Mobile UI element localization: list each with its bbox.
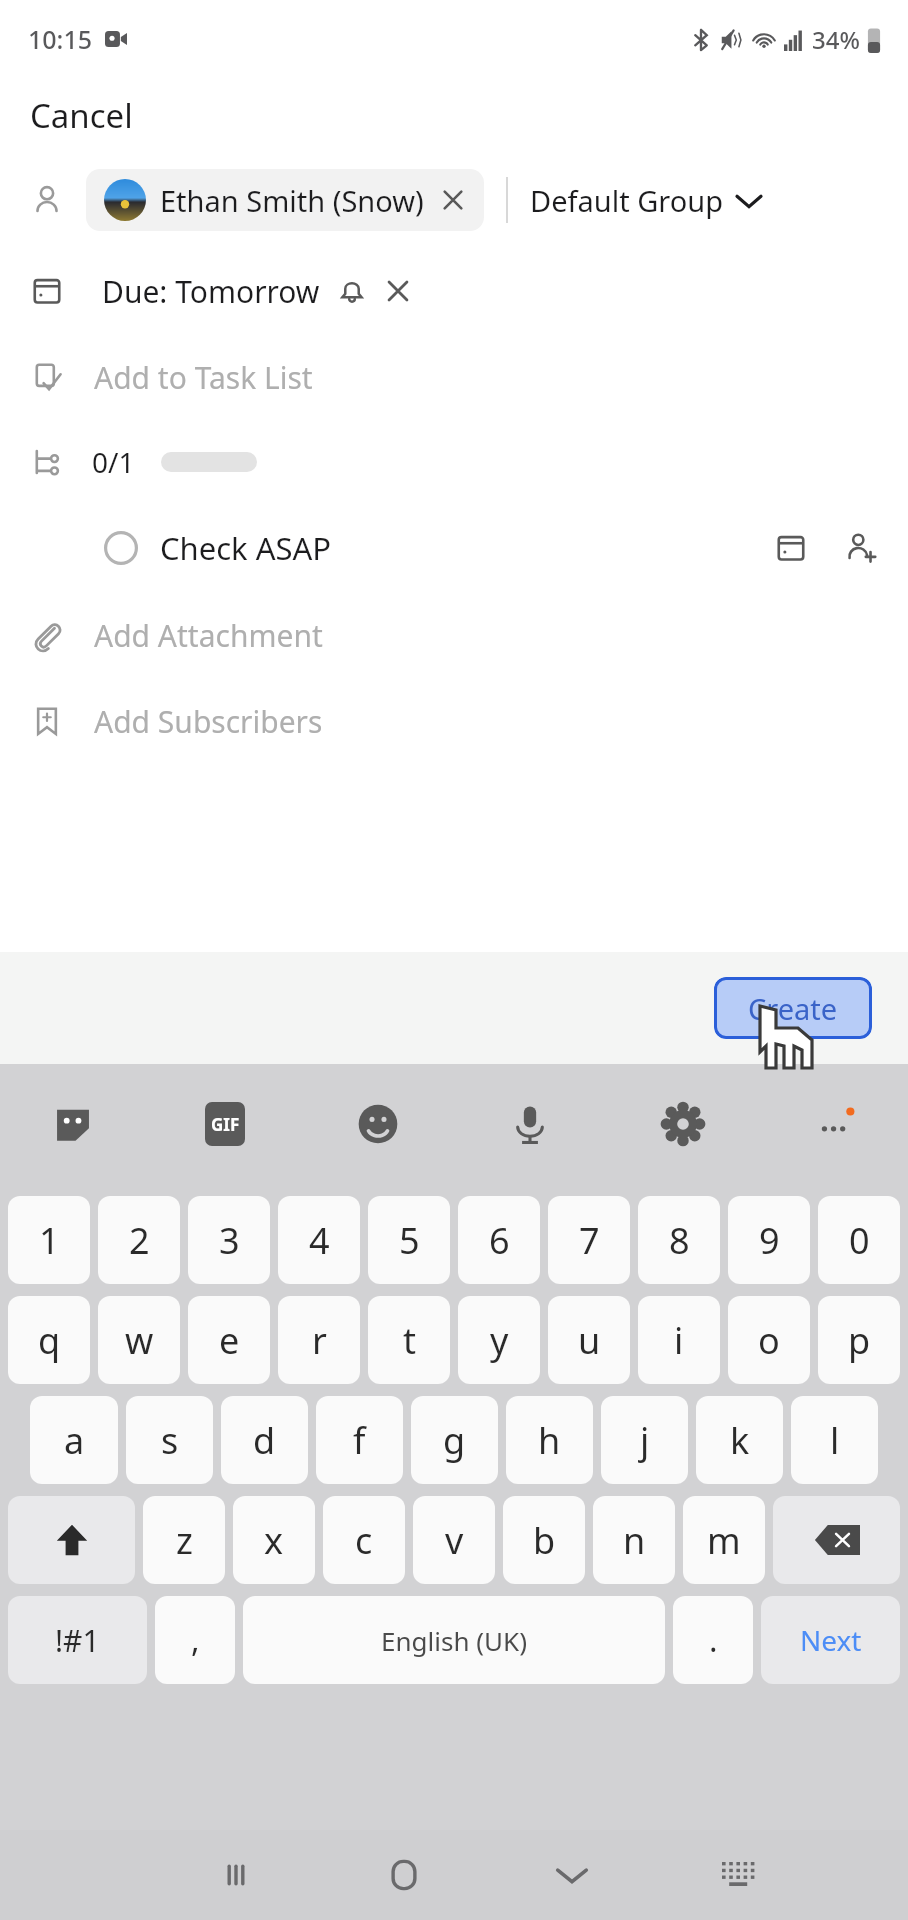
staticText: d <box>253 1416 276 1465</box>
staticText: Check ASAP <box>160 527 332 569</box>
button[interactable]: o <box>728 1296 810 1384</box>
button[interactable]: a <box>30 1396 118 1484</box>
button[interactable]: Due: Tomorrow <box>0 248 908 334</box>
button[interactable]: Switch keyboard <box>656 1830 824 1920</box>
button[interactable]: g <box>411 1396 498 1484</box>
button[interactable]: Ethan Smith (Snow) <box>86 169 484 231</box>
button[interactable]: q <box>8 1296 90 1384</box>
button[interactable]: 9 <box>728 1196 810 1284</box>
staticText: Next <box>800 1621 862 1659</box>
staticText: h <box>538 1416 561 1465</box>
button[interactable]: d <box>221 1396 308 1484</box>
staticText: 0/1 <box>92 443 135 481</box>
staticText: i <box>674 1316 684 1365</box>
button[interactable]: Add to Task List <box>0 334 908 420</box>
button[interactable]: s <box>126 1396 213 1484</box>
staticText: p <box>848 1316 871 1365</box>
button[interactable]: 2 <box>98 1196 180 1284</box>
button[interactable]: GIF <box>198 1097 252 1151</box>
button[interactable]: 0 <box>818 1196 900 1284</box>
button[interactable]: Hide keyboard <box>488 1830 656 1920</box>
button[interactable]: Voice input <box>503 1097 557 1151</box>
button[interactable]: 5 <box>368 1196 450 1284</box>
button[interactable]: i <box>638 1296 720 1384</box>
staticText: f <box>353 1416 366 1465</box>
button[interactable]: x <box>233 1496 315 1584</box>
button[interactable]: b <box>503 1496 585 1584</box>
other: Subtask due date <box>774 531 808 565</box>
button[interactable]: 8 <box>638 1196 720 1284</box>
button[interactable]: n <box>593 1496 675 1584</box>
button[interactable]: e <box>188 1296 270 1384</box>
other: Remove assignee <box>440 187 466 213</box>
staticText: , <box>191 1618 200 1662</box>
button[interactable]: 3 <box>188 1196 270 1284</box>
button[interactable]: Add Subscribers <box>0 678 908 764</box>
button[interactable]: Next <box>761 1596 900 1684</box>
button[interactable]: Default Group <box>530 173 761 228</box>
button[interactable]: w <box>98 1296 180 1384</box>
button[interactable]: English (UK) <box>243 1596 665 1684</box>
button[interactable]: 1 <box>8 1196 90 1284</box>
button[interactable]: j <box>601 1396 688 1484</box>
staticText: o <box>758 1316 780 1365</box>
staticText: 7 <box>579 1216 600 1265</box>
button[interactable]: Check ASAP <box>0 504 908 592</box>
staticText: 8 <box>669 1216 690 1265</box>
button[interactable]: More options <box>808 1097 862 1151</box>
staticText: Ethan Smith (Snow) <box>160 181 424 220</box>
button[interactable]: 4 <box>278 1196 360 1284</box>
button[interactable]: Backspace <box>773 1496 900 1584</box>
button[interactable]: y <box>458 1296 540 1384</box>
staticText: Create <box>748 989 838 1028</box>
button[interactable]: k <box>696 1396 783 1484</box>
button[interactable]: 7 <box>548 1196 630 1284</box>
button[interactable]: h <box>506 1396 593 1484</box>
button[interactable]: Add Attachment <box>0 592 908 678</box>
staticText: b <box>533 1516 556 1565</box>
staticText: n <box>623 1516 646 1565</box>
staticText: Due: Tomorrow <box>102 271 320 312</box>
button[interactable]: !#1 <box>8 1596 147 1684</box>
staticText: e <box>219 1316 240 1365</box>
staticText: Add Attachment <box>94 615 323 656</box>
button[interactable]: u <box>548 1296 630 1384</box>
button[interactable]: m <box>683 1496 765 1584</box>
button[interactable]: f <box>316 1396 403 1484</box>
button[interactable]: . <box>673 1596 753 1684</box>
staticText: 4 <box>309 1216 330 1265</box>
button[interactable]: p <box>818 1296 900 1384</box>
other: Assign subtask <box>844 531 878 565</box>
button[interactable]: 6 <box>458 1196 540 1284</box>
button[interactable]: z <box>143 1496 225 1584</box>
button[interactable]: Keyboard settings <box>656 1097 710 1151</box>
button[interactable]: Emoji <box>351 1097 405 1151</box>
staticText: k <box>730 1416 750 1465</box>
button[interactable]: c <box>323 1496 405 1584</box>
button[interactable]: l <box>791 1396 878 1484</box>
staticText: u <box>578 1316 601 1365</box>
staticText: 0 <box>849 1216 870 1265</box>
staticText: English (UK) <box>381 1623 527 1658</box>
staticText: . <box>709 1618 718 1662</box>
staticText: Cancel <box>30 93 133 138</box>
staticText: t <box>403 1316 416 1365</box>
staticText: 9 <box>759 1216 780 1265</box>
staticText: Default Group <box>530 181 723 220</box>
button[interactable]: Home <box>320 1830 488 1920</box>
button[interactable]: Create <box>714 977 872 1039</box>
staticText: 6 <box>489 1216 510 1265</box>
button[interactable]: Shift <box>8 1496 135 1584</box>
button[interactable]: Stickers <box>46 1097 100 1151</box>
staticText: GIF <box>211 1113 240 1136</box>
button[interactable]: t <box>368 1296 450 1384</box>
staticText: 3 <box>219 1216 240 1265</box>
staticText: q <box>38 1316 61 1365</box>
button[interactable]: r <box>278 1296 360 1384</box>
button[interactable]: Recent apps <box>152 1830 320 1920</box>
button[interactable]: Cancel <box>0 78 908 152</box>
staticText: Add to Task List <box>94 357 313 398</box>
staticText: Add Subscribers <box>94 701 323 742</box>
button[interactable]: , <box>155 1596 235 1684</box>
button[interactable]: v <box>413 1496 495 1584</box>
